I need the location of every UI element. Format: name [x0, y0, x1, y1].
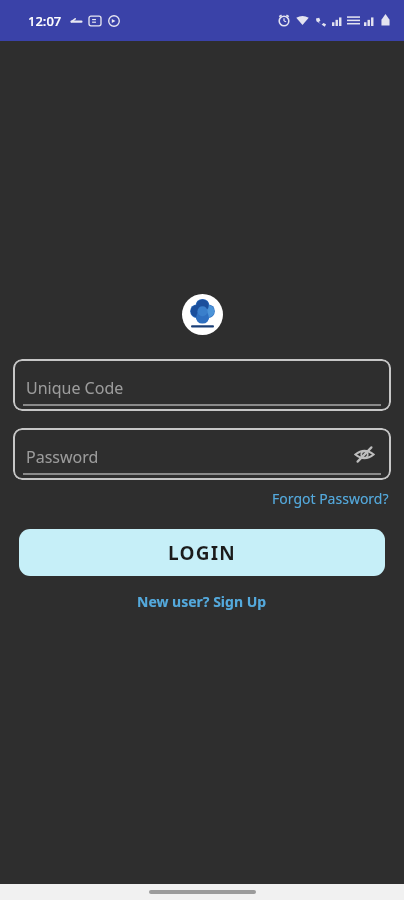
- staticText: Forgot Password?: [272, 489, 389, 508]
- staticText: New user? Sign Up: [137, 592, 267, 611]
- staticText: LOGIN: [168, 540, 236, 566]
- button[interactable]: LOGIN: [19, 529, 385, 576]
- button[interactable]: Password: [13, 428, 391, 480]
- staticText: 12:07: [28, 12, 62, 30]
- staticText: Password: [26, 446, 99, 468]
- button[interactable]: Unique Code: [13, 359, 391, 411]
- staticText: Unique Code: [26, 377, 124, 399]
- button[interactable]: Show password: [347, 437, 381, 471]
- button[interactable]: New user? Sign Up: [133, 590, 271, 613]
- button[interactable]: Forgot Password?: [270, 486, 391, 511]
